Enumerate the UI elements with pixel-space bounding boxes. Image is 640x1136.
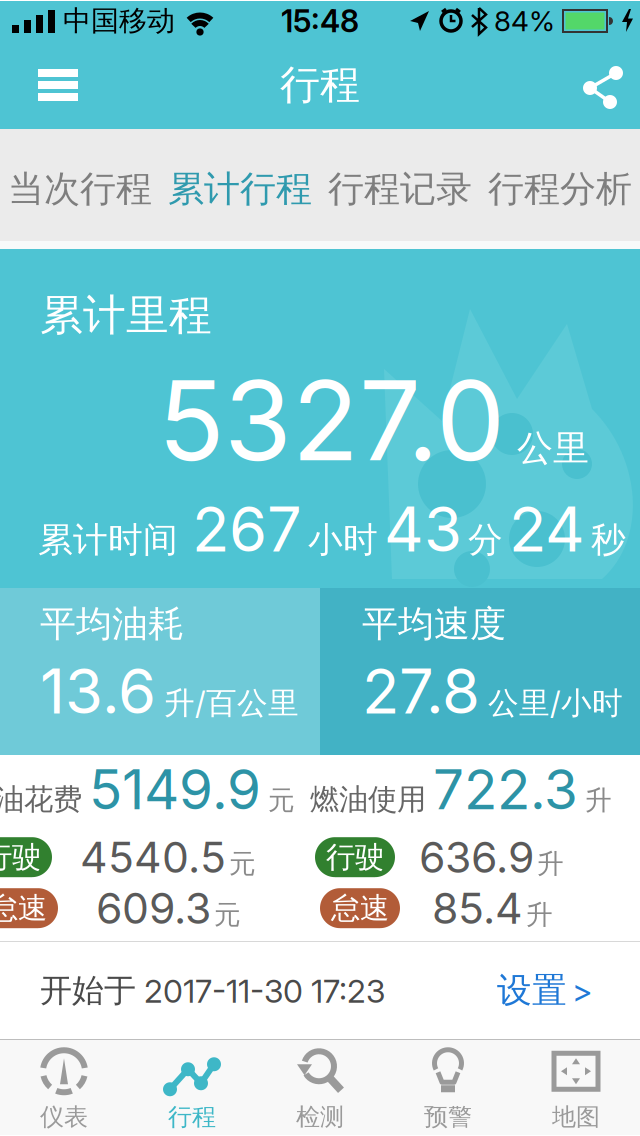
button[interactable]: 行程记录 (320, 129, 480, 249)
button[interactable]: 行程 (128, 1040, 256, 1135)
staticText: 24 (509, 493, 585, 565)
staticText: 当次行程 (8, 167, 152, 211)
button[interactable]: 菜单 (0, 69, 98, 101)
staticText: 609.3 (96, 883, 211, 933)
staticText: 元 (268, 784, 295, 817)
staticText: 升 (537, 847, 564, 880)
staticText: 公里/小时 (488, 684, 623, 722)
staticText: 27.8 (362, 655, 480, 727)
staticText: 分 (468, 519, 503, 561)
staticText: 燃油花费 (0, 781, 82, 817)
staticText: 升 (526, 898, 553, 931)
staticText: 开始于 2017-11-30 17:23 (40, 971, 385, 1010)
staticText: 13.6 (40, 655, 156, 727)
staticText: 检测 (296, 1102, 344, 1132)
staticText: 设置 (497, 969, 567, 1012)
staticText: 85.4 (432, 883, 523, 933)
staticText: 4540.5 (80, 832, 226, 882)
staticText: 行驶 (326, 839, 384, 875)
staticText: 平均油耗 (40, 602, 184, 646)
staticText: 15:48 (281, 3, 359, 39)
staticText: 元 (229, 847, 256, 880)
staticText: 行程 (168, 1102, 216, 1132)
staticText: 平均速度 (362, 602, 506, 646)
staticText: 地图 (552, 1102, 600, 1132)
staticText: 累计里程 (40, 289, 212, 341)
staticText: 累计时间 (38, 519, 178, 561)
staticText: 累计行程 (168, 167, 312, 211)
staticText: 43 (384, 493, 462, 565)
button[interactable]: 行程分析 (480, 129, 640, 249)
staticText: 秒 (591, 519, 626, 561)
staticText: 5327.0 (158, 356, 505, 485)
button[interactable]: 预警 (384, 1040, 512, 1135)
staticText: 预警 (424, 1102, 472, 1132)
staticText: 行程记录 (328, 167, 472, 211)
button[interactable]: 检测 (256, 1040, 384, 1135)
staticText: 升 (585, 784, 612, 817)
staticText: 怠速 (0, 890, 47, 926)
staticText: 行程 (280, 60, 360, 109)
button[interactable]: 仪表 (0, 1040, 128, 1135)
staticText: 燃油使用 (310, 781, 426, 817)
staticText: 84% (494, 4, 555, 37)
staticText: 元 (214, 898, 241, 931)
staticText: 中国移动 (63, 4, 175, 38)
staticText: 升/百公里 (164, 684, 299, 722)
button[interactable]: 分享 (558, 61, 640, 109)
staticText: 636.9 (419, 832, 534, 882)
staticText: 行程分析 (488, 167, 632, 211)
button[interactable]: 当次行程 (0, 129, 160, 249)
button[interactable]: 累计行程 (160, 129, 320, 249)
staticText: 267 (192, 493, 302, 565)
staticText: 行驶 (0, 839, 41, 875)
staticText: 仪表 (40, 1102, 88, 1132)
staticText: 怠速 (331, 890, 389, 926)
button[interactable]: 设置 (497, 969, 593, 1012)
staticText: 722.3 (433, 757, 578, 821)
staticText: > (572, 972, 593, 1009)
staticText: 小时 (308, 519, 378, 561)
staticText: 公里 (517, 426, 589, 470)
staticText: 5149.9 (89, 757, 261, 821)
button[interactable]: 地图 (512, 1040, 640, 1135)
